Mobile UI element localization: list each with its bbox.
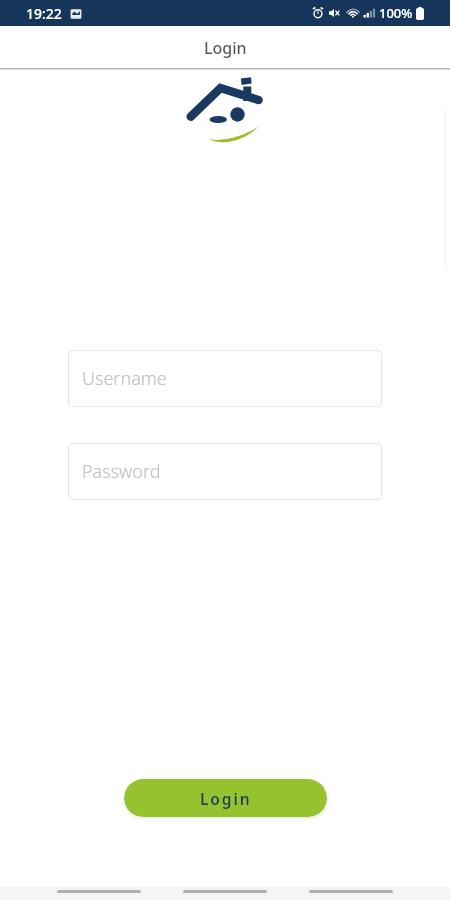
staticText: Login <box>204 37 247 59</box>
button[interactable]: Back <box>309 887 393 900</box>
staticText: Username <box>82 366 167 391</box>
staticText: Login <box>200 788 252 809</box>
staticText: Password <box>82 459 161 484</box>
button[interactable]: Home <box>183 887 267 900</box>
button[interactable]: Recents <box>57 887 141 900</box>
button[interactable]: Username <box>68 350 382 407</box>
button[interactable]: Login <box>124 779 327 817</box>
button[interactable]: Password <box>68 443 382 500</box>
button[interactable]: Info card <box>445 105 450 272</box>
staticText: 19:22 <box>26 4 62 23</box>
staticText: 100% <box>379 4 413 22</box>
